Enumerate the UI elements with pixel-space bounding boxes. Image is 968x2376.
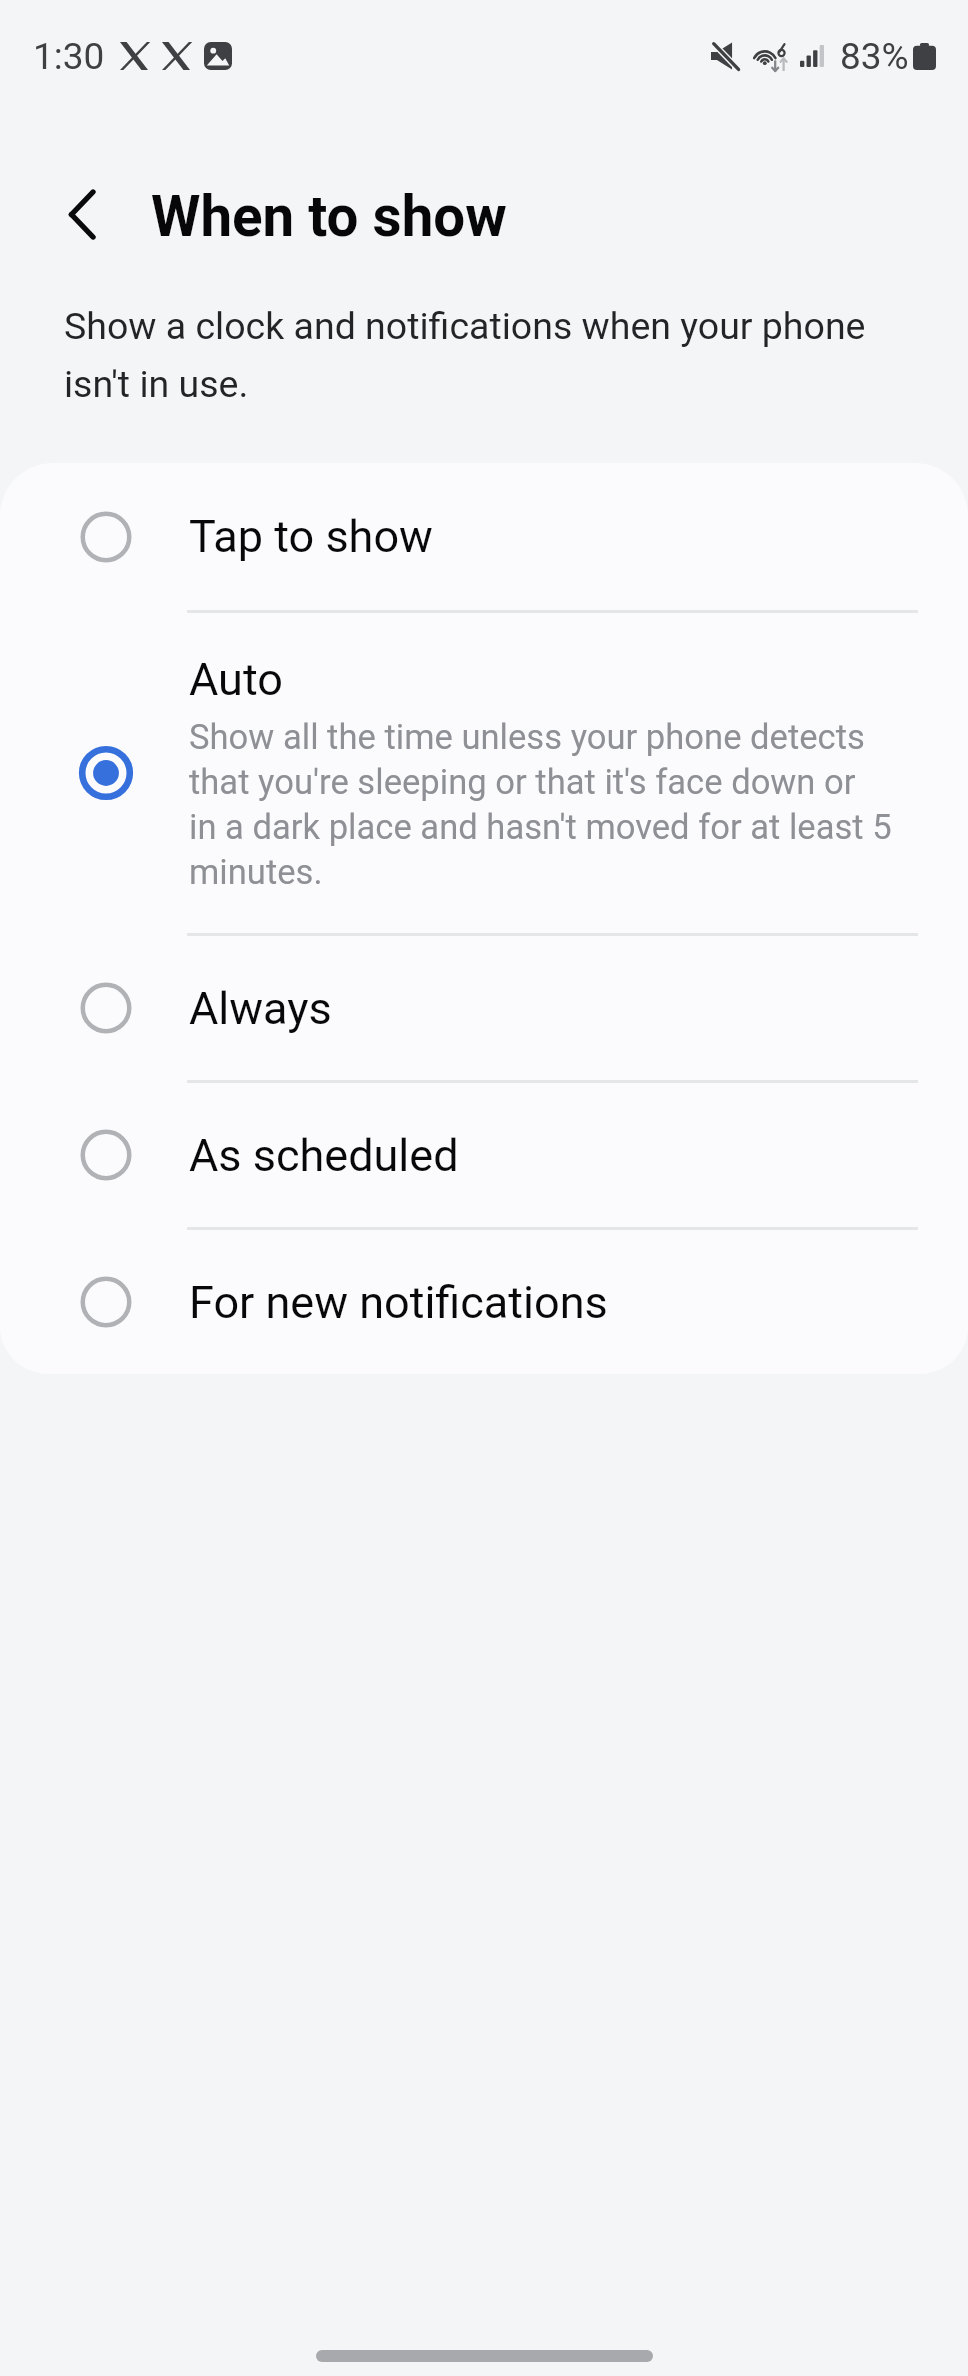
staticText: For new notifications [189,1276,608,1329]
staticText: Show a clock and notifications when your… [64,293,908,409]
staticText: Always [189,982,332,1035]
button[interactable]: Navigate up [46,178,118,250]
staticText: Show all the time unless your phone dete… [189,713,892,893]
button[interactable]: Tap to show [0,463,968,610]
button[interactable]: Auto [0,613,968,933]
staticText: 1:30 [33,35,105,78]
button[interactable]: For new notifications [0,1230,968,1374]
staticText: When to show [151,185,507,249]
staticText: As scheduled [189,1129,459,1182]
staticText: 83% [840,35,909,78]
button[interactable]: Always [0,936,968,1080]
button[interactable]: As scheduled [0,1083,968,1227]
staticText: Auto [189,653,283,706]
staticText: Tap to show [189,510,433,563]
